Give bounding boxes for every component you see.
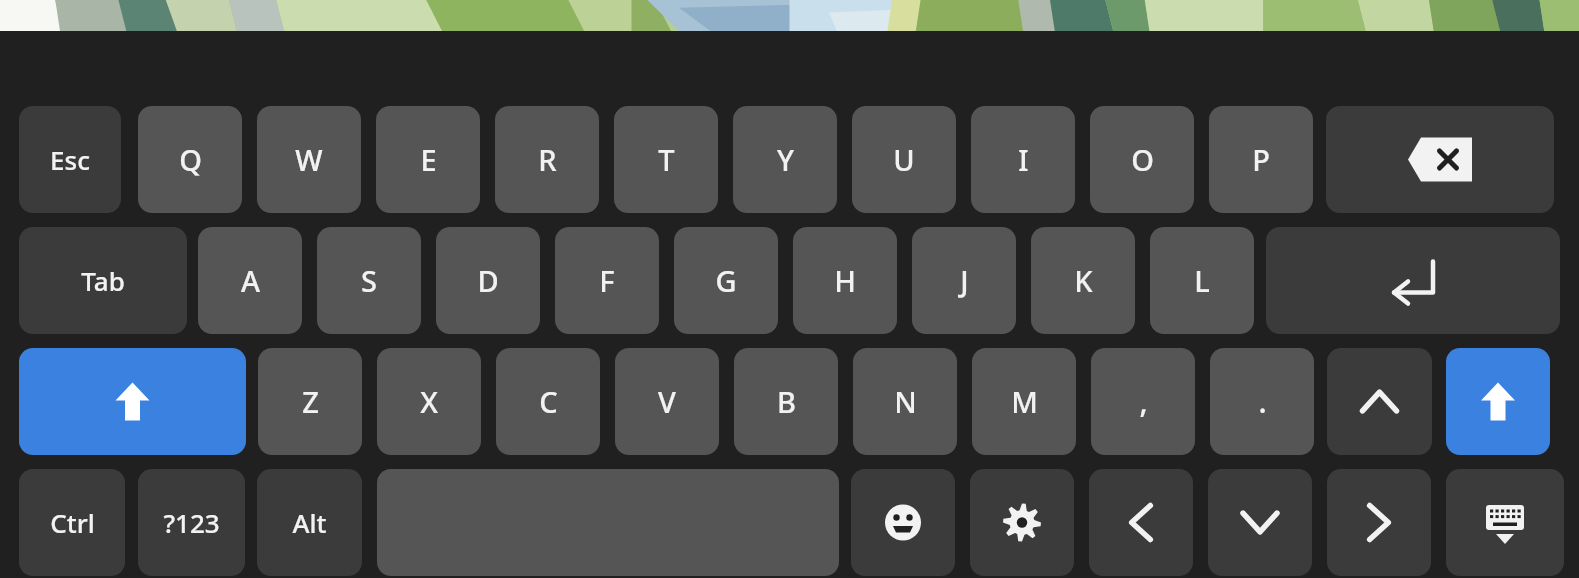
staticText: A <box>241 261 260 300</box>
button[interactable]: K <box>1031 227 1135 334</box>
button[interactable]: Backspace <box>1326 106 1554 213</box>
button[interactable]: Ctrl <box>19 469 125 576</box>
staticText: T <box>658 140 675 179</box>
staticText: D <box>477 261 499 300</box>
button[interactable]: I <box>971 106 1075 213</box>
staticText: C <box>539 382 558 421</box>
button[interactable]: L <box>1150 227 1254 334</box>
staticText: L <box>1194 261 1210 300</box>
button[interactable]: S <box>317 227 421 334</box>
button[interactable]: Right <box>1327 469 1431 576</box>
staticText: J <box>960 261 969 300</box>
button[interactable]: Y <box>733 106 837 213</box>
staticText: Q <box>179 140 202 179</box>
staticText: X <box>420 382 438 421</box>
button[interactable]: N <box>853 348 957 455</box>
button[interactable]: Settings <box>970 469 1074 576</box>
button[interactable]: Q <box>138 106 242 213</box>
staticText: E <box>420 140 437 179</box>
button[interactable]: V <box>615 348 719 455</box>
button[interactable]: B <box>734 348 838 455</box>
staticText: I <box>1018 140 1029 179</box>
staticText: Ctrl <box>50 505 95 540</box>
staticText: S <box>361 261 377 300</box>
staticText: Z <box>302 382 319 421</box>
staticText: Alt <box>292 505 327 540</box>
staticText: , <box>1139 381 1148 422</box>
button[interactable]: E <box>376 106 480 213</box>
button[interactable]: Enter <box>1266 227 1560 334</box>
button[interactable]: X <box>377 348 481 455</box>
staticText: R <box>538 140 557 179</box>
button[interactable]: Z <box>258 348 362 455</box>
staticText: O <box>1131 140 1154 179</box>
button[interactable]: A <box>198 227 302 334</box>
button[interactable]: Down <box>1208 469 1312 576</box>
button[interactable]: U <box>852 106 956 213</box>
button[interactable]: Esc <box>19 106 121 213</box>
button[interactable]: C <box>496 348 600 455</box>
staticText: N <box>894 382 917 421</box>
button[interactable]: T <box>614 106 718 213</box>
staticText: H <box>834 261 856 300</box>
staticText: ?123 <box>163 505 220 540</box>
button[interactable]: Emoji <box>851 469 955 576</box>
button[interactable]: R <box>495 106 599 213</box>
staticText: W <box>295 140 323 179</box>
button[interactable]: W <box>257 106 361 213</box>
staticText: . <box>1258 381 1267 422</box>
button[interactable]: P <box>1209 106 1313 213</box>
staticText: F <box>599 261 615 300</box>
button[interactable]: Tab <box>19 227 187 334</box>
button[interactable]: M <box>972 348 1076 455</box>
button[interactable]: , <box>1091 348 1195 455</box>
button[interactable]: Up <box>1327 348 1432 455</box>
staticText: M <box>1011 382 1038 421</box>
staticText: P <box>1252 140 1270 179</box>
staticText: K <box>1074 261 1093 300</box>
button[interactable]: ?123 <box>138 469 245 576</box>
button[interactable]: G <box>674 227 778 334</box>
button[interactable]: H <box>793 227 897 334</box>
button[interactable]: Hide keyboard <box>1446 469 1564 576</box>
button[interactable]: D <box>436 227 540 334</box>
button[interactable]: Shift <box>1446 348 1550 455</box>
staticText: Tab <box>81 263 125 298</box>
staticText: B <box>777 382 796 421</box>
button[interactable]: Shift <box>19 348 246 455</box>
staticText: Y <box>777 140 794 179</box>
button[interactable]: J <box>912 227 1016 334</box>
staticText: U <box>893 140 915 179</box>
button[interactable]: . <box>1210 348 1314 455</box>
button[interactable]: F <box>555 227 659 334</box>
staticText: G <box>715 261 737 300</box>
staticText: Esc <box>50 142 90 177</box>
button[interactable]: O <box>1090 106 1194 213</box>
button[interactable]: Alt <box>257 469 362 576</box>
button[interactable]: Left <box>1089 469 1193 576</box>
staticText: V <box>658 382 676 421</box>
